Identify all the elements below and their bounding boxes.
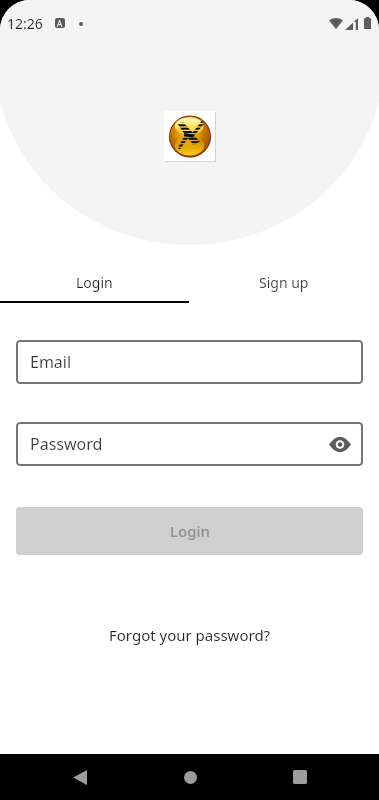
button[interactable]: Password [16,422,363,466]
button[interactable]: Back [57,754,103,800]
button[interactable]: Email [16,340,363,384]
button[interactable]: Home [167,754,213,800]
button[interactable]: Recents [277,754,323,800]
staticText: Login [76,273,113,292]
button[interactable]: Login [0,264,189,301]
staticText: Forgot your password? [109,625,271,645]
staticText: Login [170,521,210,541]
staticText: A [57,18,63,28]
button[interactable]: Login [16,507,363,555]
staticText: Email [30,351,72,373]
staticText: Sign up [259,273,309,292]
staticText: Password [30,433,103,455]
button[interactable]: Show password [326,430,354,458]
staticText: 12:26 [7,14,43,33]
button[interactable]: Forgot your password? [103,623,277,647]
button[interactable]: Sign up [189,264,379,301]
